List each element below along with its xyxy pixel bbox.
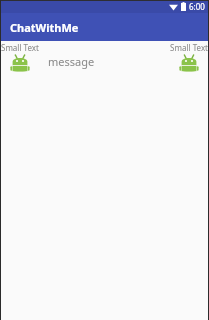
staticText: message (48, 54, 95, 69)
staticText: Small Text (170, 42, 208, 53)
staticText: 6:00 (189, 1, 205, 12)
button[interactable]: Small Text (170, 42, 208, 74)
other: Android avatar (10, 54, 30, 74)
staticText: Small Text (1, 42, 39, 53)
other: Android avatar (179, 54, 199, 74)
button[interactable]: Small Text (1, 42, 39, 74)
staticText: ChatWithMe (10, 20, 79, 35)
